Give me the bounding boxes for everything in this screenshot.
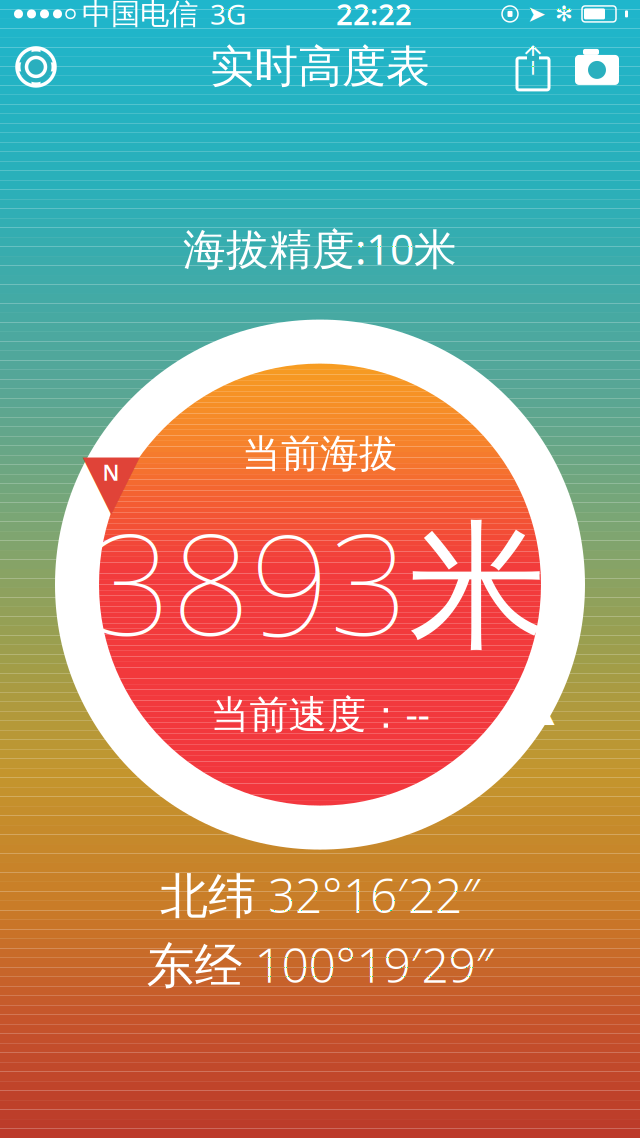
staticText: ✻ (555, 2, 573, 26)
staticText: 3G (210, 0, 246, 32)
staticText: 3893米 (92, 490, 547, 674)
button[interactable]: Settings (0, 34, 72, 100)
staticText: 实时高度表 (210, 40, 430, 94)
staticText: ▲ (501, 653, 554, 732)
staticText: 22:22 (336, 0, 412, 33)
staticText: 北纬 32°16′22″ (160, 863, 480, 926)
staticText: 中国电信 (82, 0, 198, 32)
staticText: N (102, 458, 119, 487)
staticText: 当前速度：-- (210, 688, 429, 739)
staticText: 海拔精度:10米 (183, 220, 457, 277)
staticText: ➤ (527, 1, 546, 27)
staticText: 当前海拔 (242, 430, 398, 478)
staticText: ▼ (82, 437, 139, 522)
staticText: ↑ (516, 38, 550, 84)
staticText: 东经 100°19′29″ (146, 932, 493, 996)
button[interactable]: Camera (564, 34, 630, 100)
button[interactable]: Share (502, 34, 564, 100)
